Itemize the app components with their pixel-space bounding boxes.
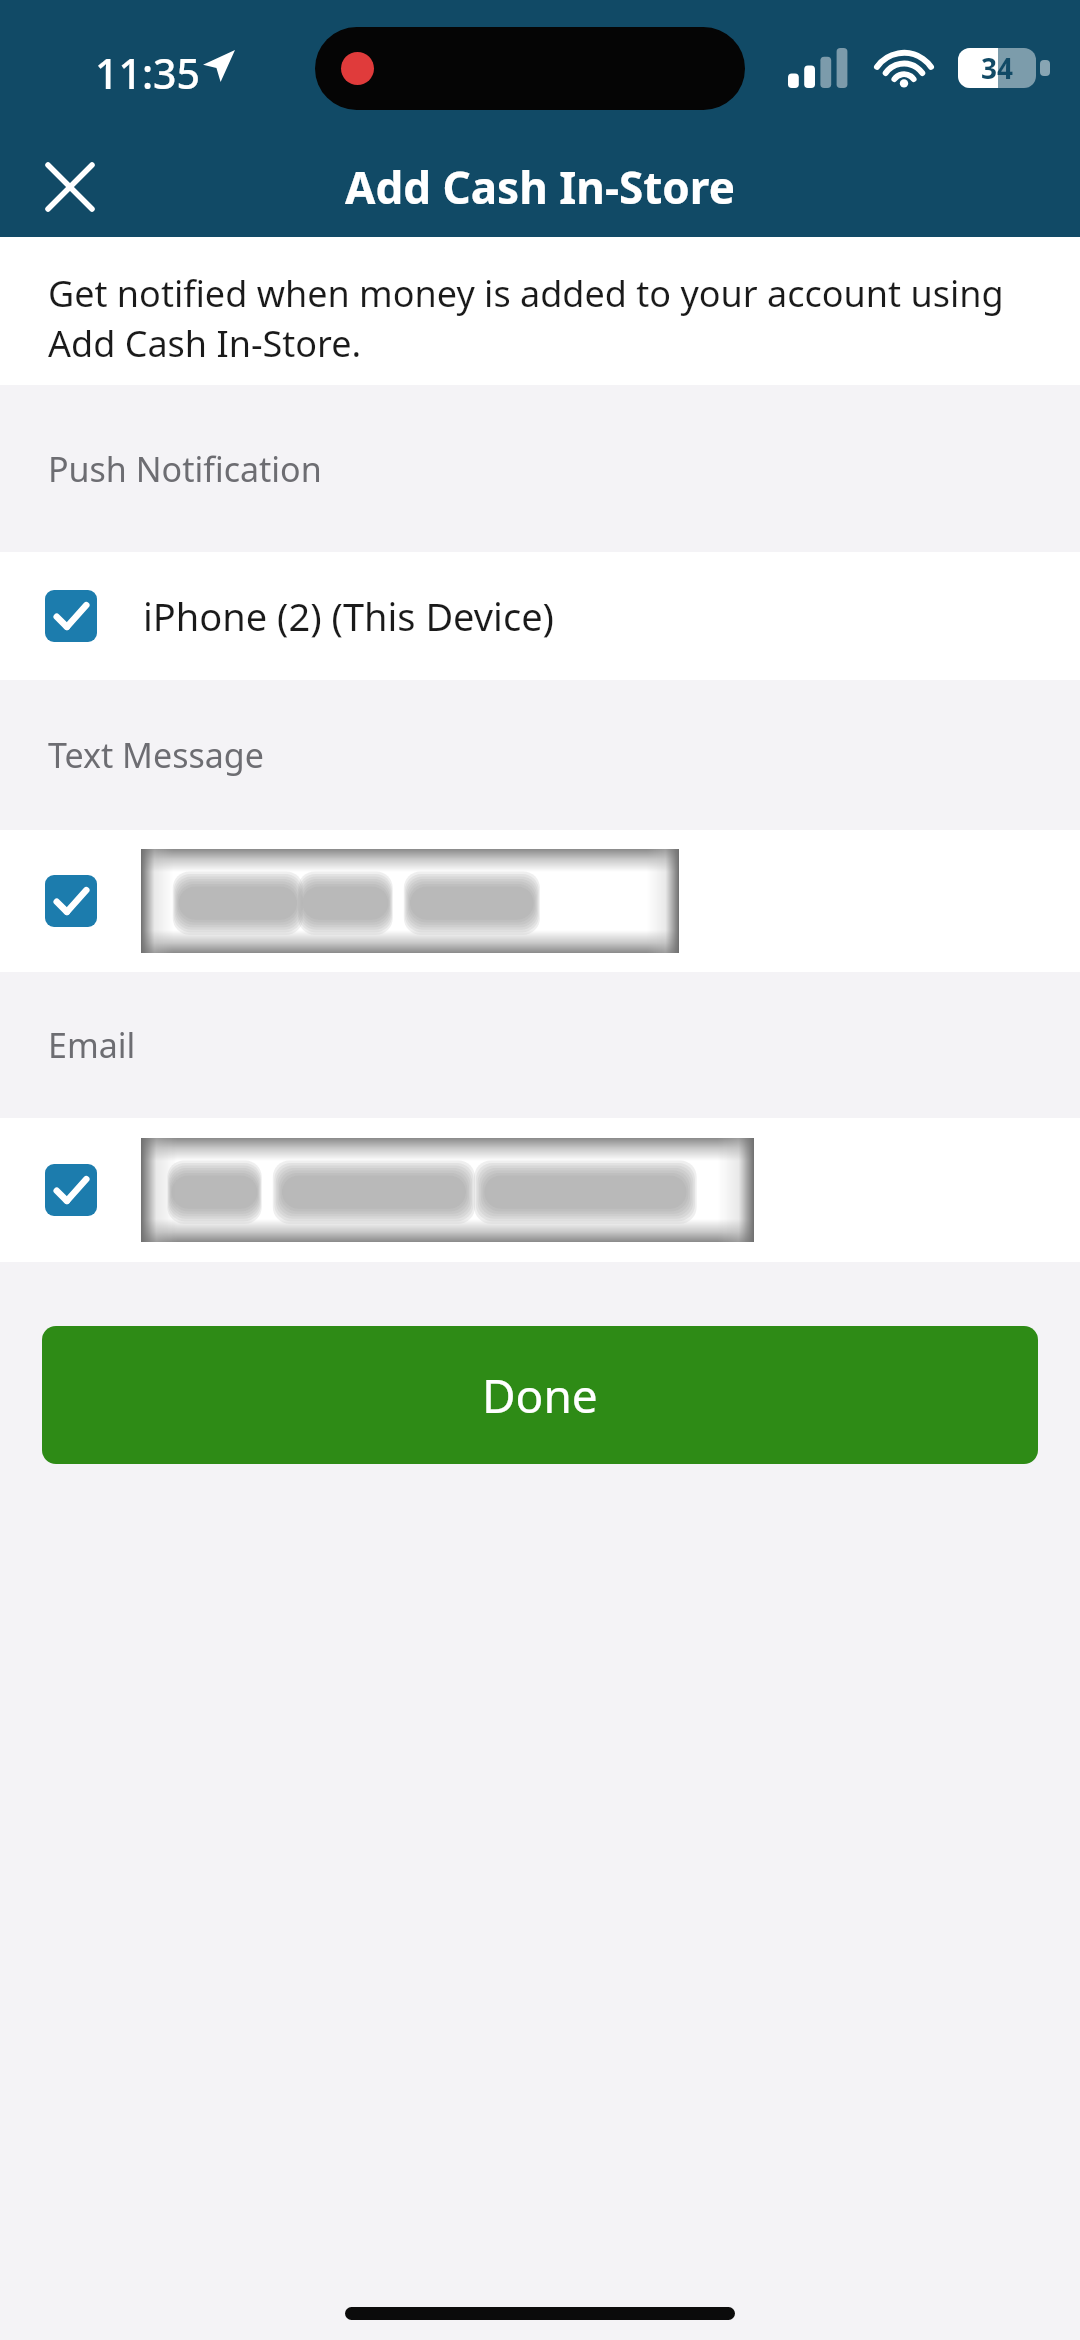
staticText: 11:35 — [95, 45, 200, 101]
staticText: Add Cash In-Store — [345, 157, 735, 217]
staticText: Done — [482, 1364, 598, 1427]
button[interactable]: iPhone (2) (This Device) — [0, 552, 1080, 680]
button[interactable] — [0, 1118, 1080, 1262]
button[interactable]: Close — [20, 137, 120, 237]
staticText: Email — [48, 1022, 136, 1068]
staticText: Push Notification — [48, 446, 322, 492]
staticText: 34 — [981, 49, 1014, 87]
button[interactable]: Done — [42, 1326, 1038, 1464]
staticText: Get notified when money is added to your… — [48, 269, 1032, 368]
button[interactable] — [0, 830, 1080, 972]
staticText: iPhone (2) (This Device) — [143, 590, 554, 642]
staticText: Text Message — [48, 732, 264, 778]
